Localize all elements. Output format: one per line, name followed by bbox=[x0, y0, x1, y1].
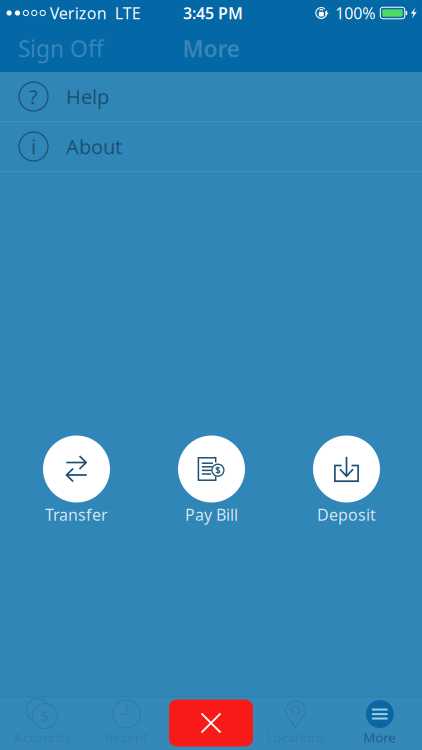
staticText: LTE bbox=[115, 2, 141, 24]
staticText: 3:45 PM bbox=[183, 2, 243, 24]
button[interactable]: Transfer bbox=[9, 435, 144, 530]
staticText: ? bbox=[29, 83, 38, 110]
staticText: More bbox=[363, 728, 396, 746]
button[interactable]: ? bbox=[0, 72, 422, 121]
staticText: Accounts bbox=[14, 728, 70, 746]
button[interactable]: Close bbox=[169, 699, 253, 746]
staticText: Verizon bbox=[50, 2, 107, 24]
staticText: Sign Off bbox=[18, 33, 104, 63]
staticText: Transfer bbox=[45, 504, 108, 525]
staticText: Locations bbox=[266, 728, 324, 746]
staticText: Deposit bbox=[317, 504, 376, 525]
button[interactable]: Pay Bill bbox=[144, 435, 279, 530]
staticText: 100% bbox=[335, 2, 375, 24]
staticText: Help bbox=[66, 83, 109, 110]
button[interactable]: Sign Off bbox=[0, 25, 114, 71]
button[interactable]: More bbox=[338, 697, 422, 750]
staticText: $ bbox=[41, 706, 49, 726]
staticText: Pay Bill bbox=[185, 504, 238, 525]
staticText: About bbox=[66, 133, 122, 160]
staticText: i bbox=[31, 133, 36, 160]
staticText: Recent bbox=[105, 728, 148, 746]
staticText: More bbox=[182, 33, 239, 63]
button[interactable]: Deposit bbox=[279, 435, 414, 530]
button[interactable]: i bbox=[0, 122, 422, 171]
